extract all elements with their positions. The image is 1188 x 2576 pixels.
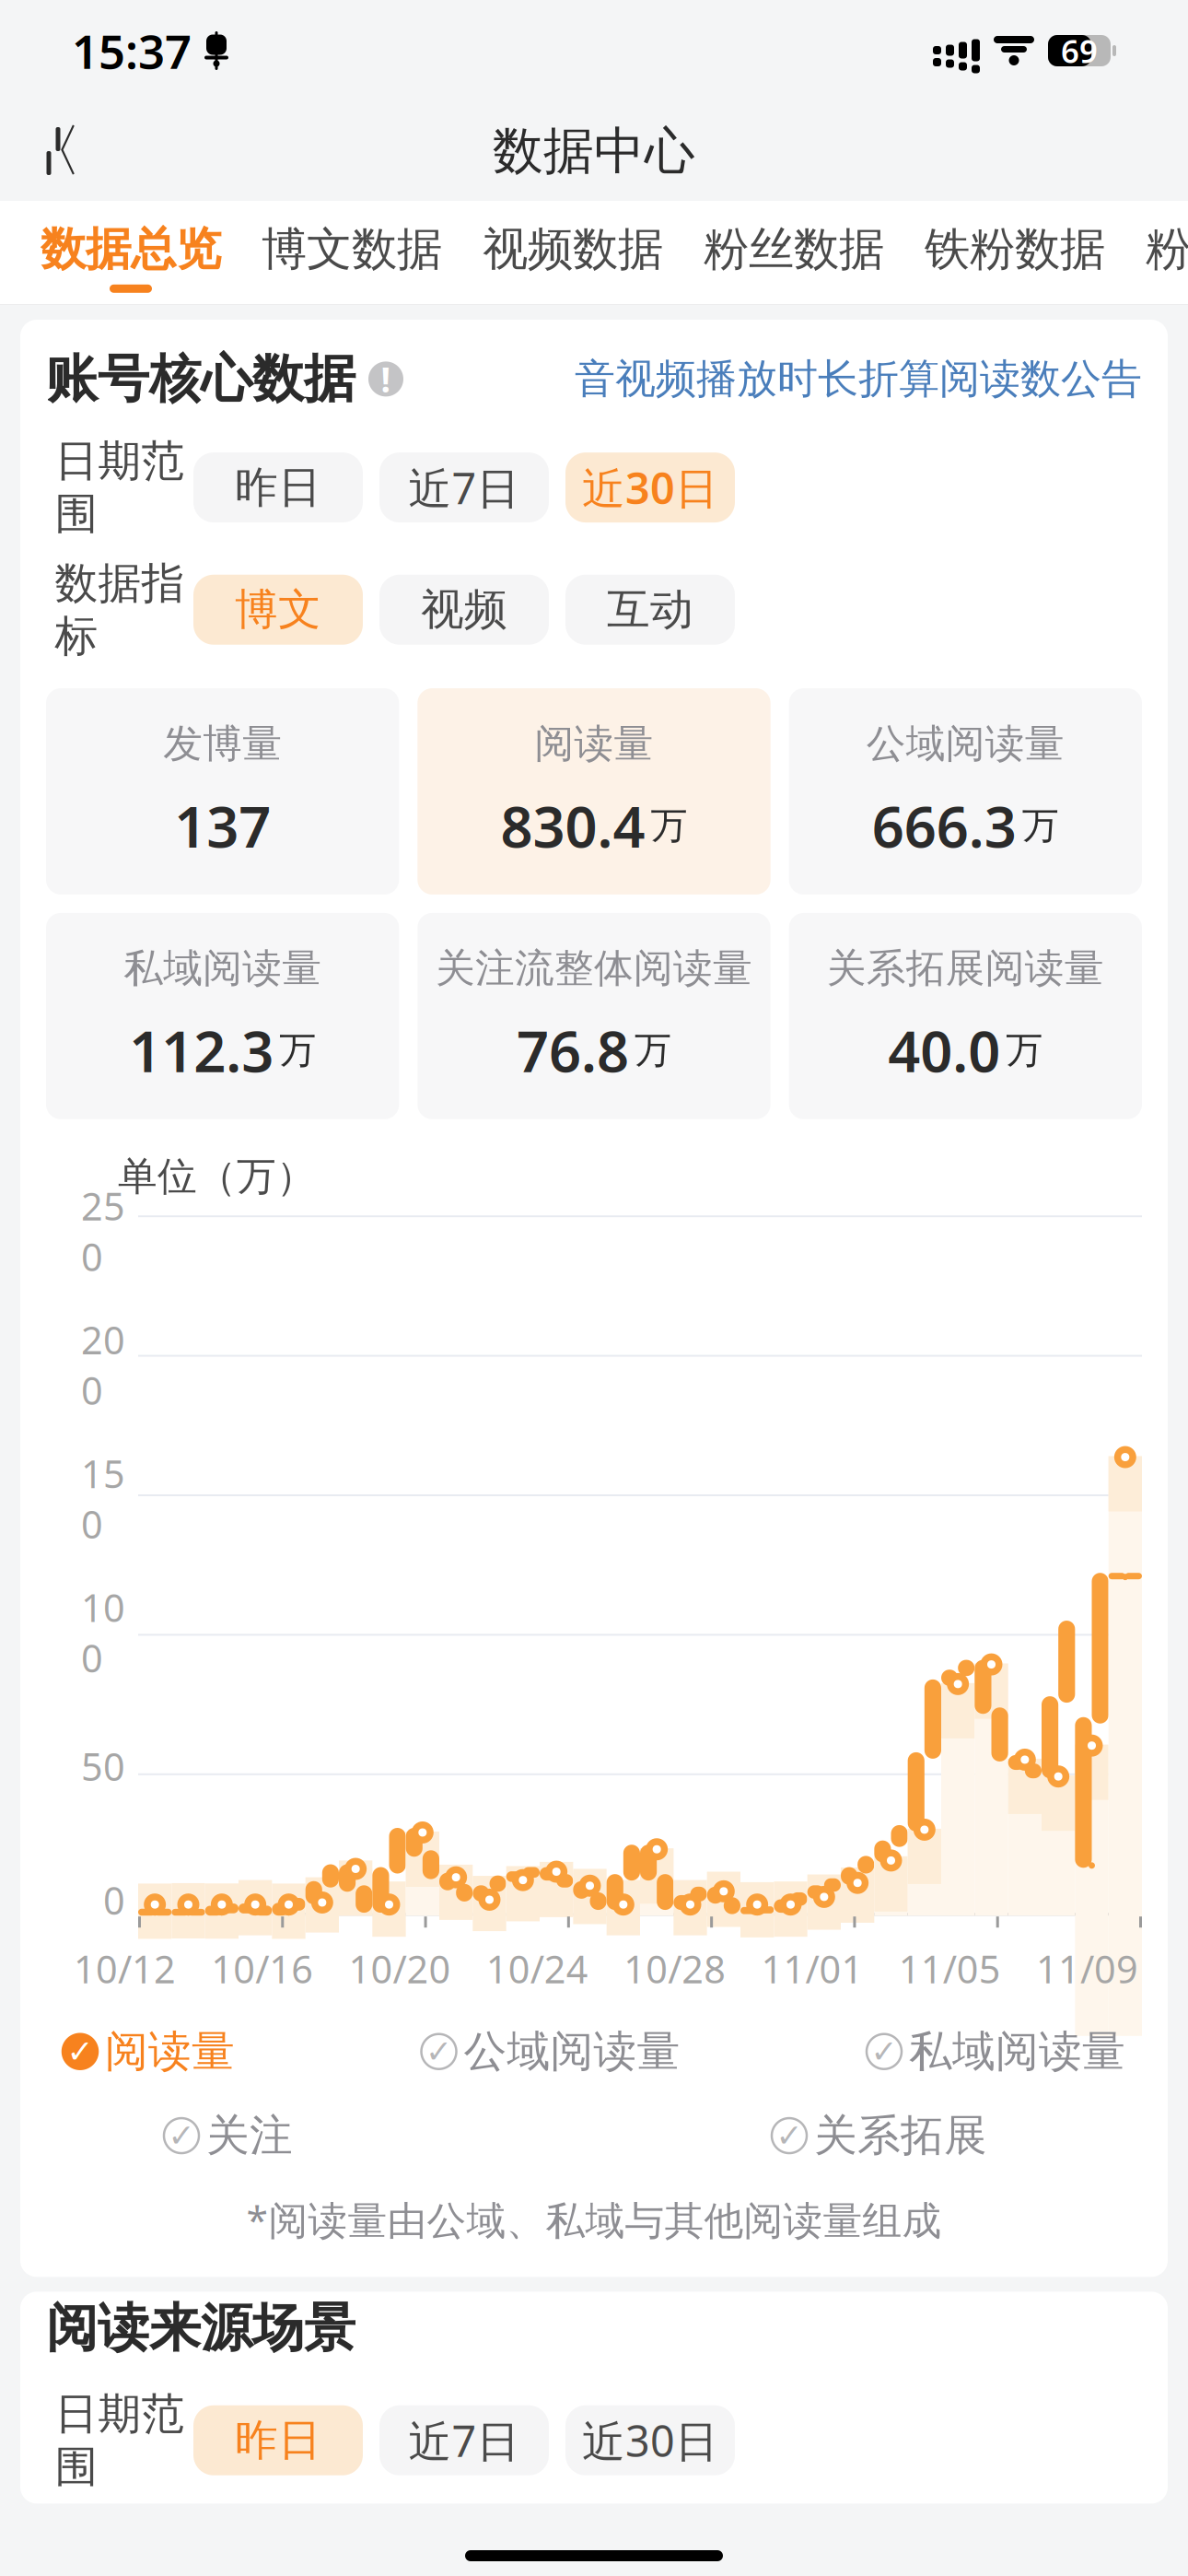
staticText: 账号核心数据 [46, 347, 355, 411]
staticText: 0 [103, 1875, 125, 1925]
button[interactable]: 昨日 [193, 2405, 363, 2475]
button[interactable]: 数据总览 [20, 212, 241, 293]
staticText: 粉丝画像 [1146, 221, 1188, 277]
staticText: 〈 [25, 116, 82, 186]
staticText: ✓ [168, 2118, 195, 2154]
staticText: 博文数据 [262, 221, 442, 277]
staticText: 10/20 [349, 1943, 451, 1994]
button[interactable]: 互动 [565, 575, 735, 645]
staticText: 阅读量 [105, 2025, 235, 2078]
button[interactable]: 近30日 [565, 2405, 735, 2475]
staticText: 10/24 [486, 1943, 588, 1994]
staticText: 数据中心 [493, 120, 695, 182]
staticText: 40.0 [888, 1013, 1000, 1088]
staticText: 私域阅读量 [909, 2025, 1125, 2078]
staticText: 10/28 [624, 1943, 726, 1994]
staticText: 11/09 [1036, 1943, 1138, 1994]
button[interactable]: ✓ [164, 2106, 293, 2166]
staticText: 11/01 [761, 1943, 863, 1994]
button[interactable]: 私域阅读量 [46, 913, 399, 1119]
staticText: 铁粉数据 [925, 221, 1105, 277]
staticText: 11/05 [899, 1943, 1001, 1994]
button[interactable]: 视频 [379, 575, 549, 645]
button[interactable]: 公域阅读量 [789, 688, 1142, 895]
staticText: 日期范围 [55, 435, 185, 540]
staticText: 关系拓展阅读量 [827, 944, 1104, 993]
staticText: 200 [81, 1314, 125, 1415]
staticText: 10/12 [74, 1943, 176, 1994]
staticText: 万 [651, 803, 687, 848]
staticText: 10/16 [211, 1943, 313, 1994]
staticText: 公域阅读量 [866, 720, 1064, 768]
staticText: 粉丝数据 [704, 221, 884, 277]
button[interactable]: 阅读量 [417, 688, 770, 895]
button[interactable]: 粉丝画像 [1125, 212, 1188, 293]
staticText: 76.8 [517, 1013, 629, 1088]
staticText: 830.4 [501, 788, 645, 863]
staticText: 互动 [607, 583, 693, 636]
button[interactable]: 视频数据 [462, 212, 683, 293]
button[interactable]: 关系拓展阅读量 [789, 913, 1142, 1119]
staticText: 50 [81, 1741, 125, 1791]
staticText: 昨日 [235, 461, 321, 514]
button[interactable]: 近30日 [565, 452, 735, 522]
staticText: 单位（万） [118, 1152, 316, 1201]
staticText: 数据总览 [41, 221, 221, 277]
staticText: ✓ [425, 2033, 452, 2070]
staticText: 666.3 [872, 788, 1017, 863]
staticText: 250 [81, 1180, 125, 1282]
button[interactable]: 发博量 [46, 688, 399, 895]
button[interactable]: 博文数据 [241, 212, 462, 293]
staticText: 15:37 [72, 20, 192, 82]
button[interactable]: 铁粉数据 [904, 212, 1125, 293]
button[interactable]: ✓ [867, 2021, 1125, 2082]
button[interactable]: 博文 [193, 575, 363, 645]
staticText: 昨日 [235, 2414, 321, 2467]
staticText: 日期范围 [55, 2387, 185, 2493]
staticText: 数据指标 [55, 557, 185, 662]
staticText: 万 [635, 1028, 671, 1073]
staticText: 100 [81, 1582, 125, 1683]
button[interactable]: 昨日 [193, 452, 363, 522]
staticText: ✓ [776, 2118, 803, 2154]
staticText: 112.3 [129, 1013, 274, 1088]
staticText: 69 [1061, 29, 1098, 72]
staticText: 关系拓展 [814, 2109, 987, 2162]
staticText: 阅读来源场景 [46, 2297, 355, 2360]
staticText: 发博量 [163, 720, 282, 768]
staticText: 万 [1006, 1028, 1043, 1073]
staticText: 近30日 [582, 2412, 718, 2469]
button[interactable]: 返回 [17, 114, 90, 188]
button[interactable]: ✓ [772, 2106, 987, 2166]
staticText: *阅读量由公域、私域与其他阅读量组成 [246, 2193, 942, 2246]
staticText: 近7日 [408, 2412, 520, 2469]
staticText: 私域阅读量 [124, 944, 322, 993]
staticText: 万 [1022, 803, 1059, 848]
staticText: ✓ [871, 2033, 897, 2070]
staticText: 阅读量 [535, 720, 653, 768]
button[interactable]: 近7日 [379, 452, 549, 522]
button[interactable]: 音视频播放时长折算阅读数公告 [575, 354, 1142, 404]
staticText: ! [381, 356, 391, 402]
staticText: 150 [81, 1448, 125, 1549]
staticText: 视频 [421, 583, 507, 636]
staticText: 近7日 [408, 459, 520, 516]
staticText: ✓ [67, 2033, 93, 2070]
staticText: 关注流整体阅读量 [436, 944, 752, 993]
staticText: 关注 [206, 2109, 293, 2162]
staticText: 博文 [235, 583, 321, 636]
staticText: 137 [174, 788, 271, 863]
button[interactable]: ✓ [421, 2021, 680, 2082]
button[interactable]: 粉丝数据 [683, 212, 904, 293]
staticText: 公域阅读量 [464, 2025, 680, 2078]
button[interactable]: 数据说明 [355, 351, 403, 407]
button[interactable]: ✓ [63, 2021, 235, 2082]
staticText: 视频数据 [483, 221, 663, 277]
staticText: 音视频播放时长折算阅读数公告 [575, 354, 1142, 404]
button[interactable]: 近7日 [379, 2405, 549, 2475]
button[interactable]: 关注流整体阅读量 [417, 913, 770, 1119]
staticText: 近30日 [582, 459, 718, 516]
staticText: 万 [279, 1028, 316, 1073]
